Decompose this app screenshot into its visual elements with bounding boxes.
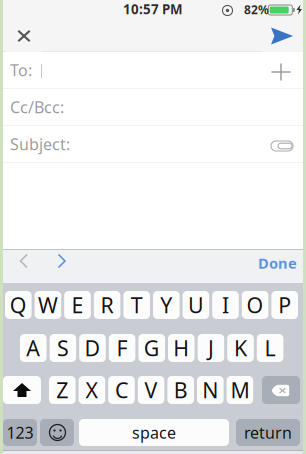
button[interactable]: return — [236, 419, 300, 446]
button[interactable]: 123 — [3, 419, 37, 446]
button[interactable]: I — [212, 291, 239, 319]
staticText: S — [57, 334, 69, 362]
staticText: K — [234, 334, 247, 362]
staticText: 10:57 PM — [123, 0, 183, 18]
staticText: To: — [10, 59, 32, 81]
button[interactable]: R — [94, 291, 120, 319]
staticText: L — [265, 334, 276, 362]
button[interactable]: F — [109, 334, 135, 362]
staticText: N — [202, 376, 218, 404]
staticText: D — [84, 334, 100, 362]
staticText: C — [115, 376, 128, 404]
staticText: H — [173, 334, 189, 362]
staticText: return — [244, 422, 292, 443]
button[interactable]: Close — [6, 20, 42, 52]
button[interactable]: Y — [153, 291, 180, 319]
staticText: X — [85, 376, 98, 404]
staticText: M — [230, 376, 249, 404]
staticText: F — [117, 334, 128, 362]
staticText: O — [247, 291, 264, 319]
button[interactable]: T — [123, 291, 150, 319]
staticText: 82% — [244, 1, 269, 17]
button[interactable]: G — [138, 334, 165, 362]
button[interactable]: J — [198, 334, 224, 362]
button[interactable]: Z — [49, 376, 76, 404]
button[interactable]: L — [257, 334, 283, 362]
button[interactable]: Attach file — [266, 130, 298, 162]
staticText: J — [208, 334, 214, 362]
button[interactable]: P — [271, 291, 298, 319]
button[interactable]: Send — [262, 20, 302, 52]
staticText: W — [38, 291, 58, 319]
button[interactable]: Next field — [52, 251, 72, 271]
button[interactable]: Done — [252, 256, 297, 270]
staticText: Q — [10, 291, 27, 319]
staticText: space — [132, 422, 176, 443]
button[interactable]: space — [79, 419, 229, 446]
staticText: 123 — [6, 422, 33, 443]
button[interactable]: Previous field — [14, 251, 34, 271]
staticText: Cc/Bcc: — [10, 96, 64, 118]
staticText: I — [222, 291, 229, 319]
button[interactable]: V — [138, 376, 164, 404]
button[interactable]: A — [20, 334, 47, 362]
staticText: B — [174, 376, 188, 404]
staticText: Subject: — [10, 133, 70, 155]
button[interactable]: M — [227, 376, 253, 404]
staticText: U — [188, 291, 204, 319]
button[interactable]: Shift — [3, 376, 41, 404]
staticText: Y — [160, 291, 172, 319]
button[interactable]: K — [227, 334, 254, 362]
button[interactable]: Add contact — [265, 56, 297, 88]
staticText: A — [26, 334, 40, 362]
staticText: P — [278, 291, 291, 319]
staticText: T — [131, 291, 143, 319]
staticText: G — [144, 334, 160, 362]
button[interactable]: Delete — [262, 376, 300, 404]
button[interactable]: Q — [5, 291, 32, 319]
staticText: R — [101, 291, 114, 319]
button[interactable]: O — [242, 291, 268, 319]
button[interactable]: D — [79, 334, 106, 362]
staticText: V — [145, 376, 158, 404]
button[interactable]: X — [79, 376, 105, 404]
button[interactable]: E — [64, 291, 91, 319]
button[interactable]: W — [35, 291, 61, 319]
button[interactable]: S — [50, 334, 76, 362]
button[interactable]: H — [168, 334, 195, 362]
button[interactable]: N — [197, 376, 224, 404]
button[interactable]: Emoji — [40, 419, 74, 446]
button[interactable]: B — [167, 376, 194, 404]
staticText: Done — [258, 253, 297, 273]
staticText: Z — [56, 376, 68, 404]
button[interactable]: C — [108, 376, 135, 404]
button[interactable]: U — [183, 291, 209, 319]
staticText: E — [71, 291, 83, 319]
